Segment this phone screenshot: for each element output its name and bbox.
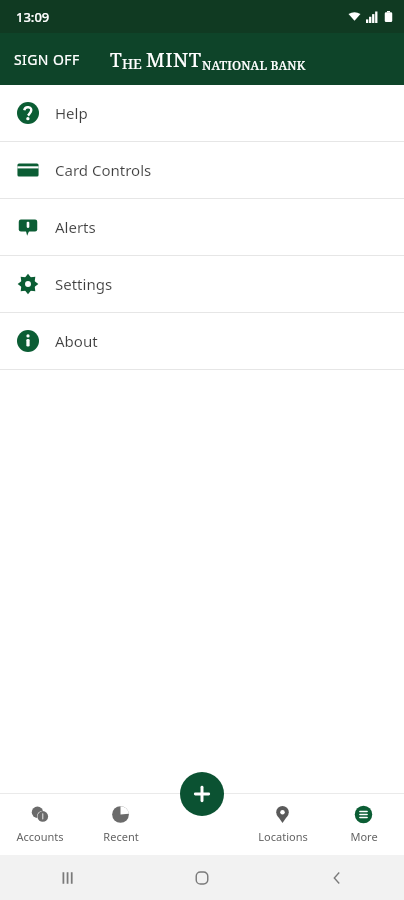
- staticText: Accounts: [16, 829, 64, 844]
- staticText: T: [110, 47, 122, 73]
- staticText: HE: [122, 54, 146, 73]
- staticText: Settings: [55, 274, 113, 294]
- button[interactable]: About: [0, 313, 404, 369]
- button[interactable]: Alerts: [0, 199, 404, 255]
- staticText: Recent: [103, 829, 139, 844]
- button[interactable]: Card Controls: [0, 142, 404, 198]
- button[interactable]: Recent: [80, 793, 161, 855]
- staticText: Locations: [258, 829, 308, 844]
- button[interactable]: Locations: [242, 793, 323, 855]
- button[interactable]: Add: [180, 772, 224, 816]
- staticText: SIGN OFF: [14, 50, 80, 69]
- staticText: 13:09: [16, 8, 50, 26]
- staticText: More: [350, 829, 378, 844]
- button[interactable]: More: [323, 793, 404, 855]
- staticText: Card Controls: [55, 160, 152, 180]
- button[interactable]: Accounts: [0, 793, 80, 855]
- staticText: About: [55, 331, 98, 351]
- button[interactable]: Help: [0, 85, 404, 141]
- button[interactable]: Home: [134, 855, 269, 900]
- staticText: MINT: [146, 46, 202, 73]
- staticText: Alerts: [55, 217, 96, 237]
- staticText: Help: [55, 103, 88, 123]
- button[interactable]: SIGN OFF: [0, 40, 94, 79]
- button[interactable]: Settings: [0, 256, 404, 312]
- button[interactable]: Recents: [0, 855, 134, 900]
- staticText: NATIONAL BANK: [202, 57, 306, 73]
- button[interactable]: Back: [269, 855, 404, 900]
